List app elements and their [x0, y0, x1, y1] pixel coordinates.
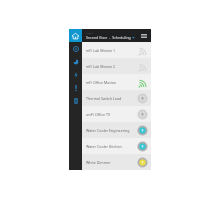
staticText: mFi Lab Motion 2	[86, 64, 137, 69]
staticText: Thermal Switch Load	[86, 96, 137, 101]
button[interactable]: Home	[69, 29, 82, 42]
staticText: Second floor - Scheduling	[86, 35, 131, 40]
button[interactable]: Dashboard	[69, 42, 82, 55]
button[interactable]: Devices	[69, 94, 82, 107]
button[interactable]: uniFi Office TV	[82, 106, 151, 122]
button[interactable]: mFi Office Motion	[82, 74, 151, 90]
button[interactable]: Menu	[137, 29, 151, 42]
staticText: VIEW	[86, 31, 93, 34]
staticText: Water Cooler Engineering	[86, 128, 137, 133]
button[interactable]: Thermal Switch Load	[82, 90, 151, 106]
staticText: uniFi Office TV	[86, 112, 137, 117]
staticText: Water Cooler Kitchen	[86, 144, 137, 149]
button[interactable]: mFi Lab Motion 2	[82, 58, 151, 74]
button[interactable]: Power	[69, 68, 82, 81]
staticText: mFi Lab Motion 1	[86, 48, 137, 53]
staticText: mFi Office Motion	[86, 80, 137, 85]
button[interactable]: Alerts	[69, 81, 82, 94]
staticText: White Dimmer	[86, 160, 137, 165]
button[interactable]: White Dimmer	[82, 154, 151, 170]
button[interactable]: Water Cooler Engineering	[82, 122, 151, 138]
button[interactable]: Water Cooler Kitchen	[82, 138, 151, 154]
button[interactable]: mFi Lab Motion 1	[82, 42, 151, 58]
button[interactable]: Reports	[69, 55, 82, 68]
